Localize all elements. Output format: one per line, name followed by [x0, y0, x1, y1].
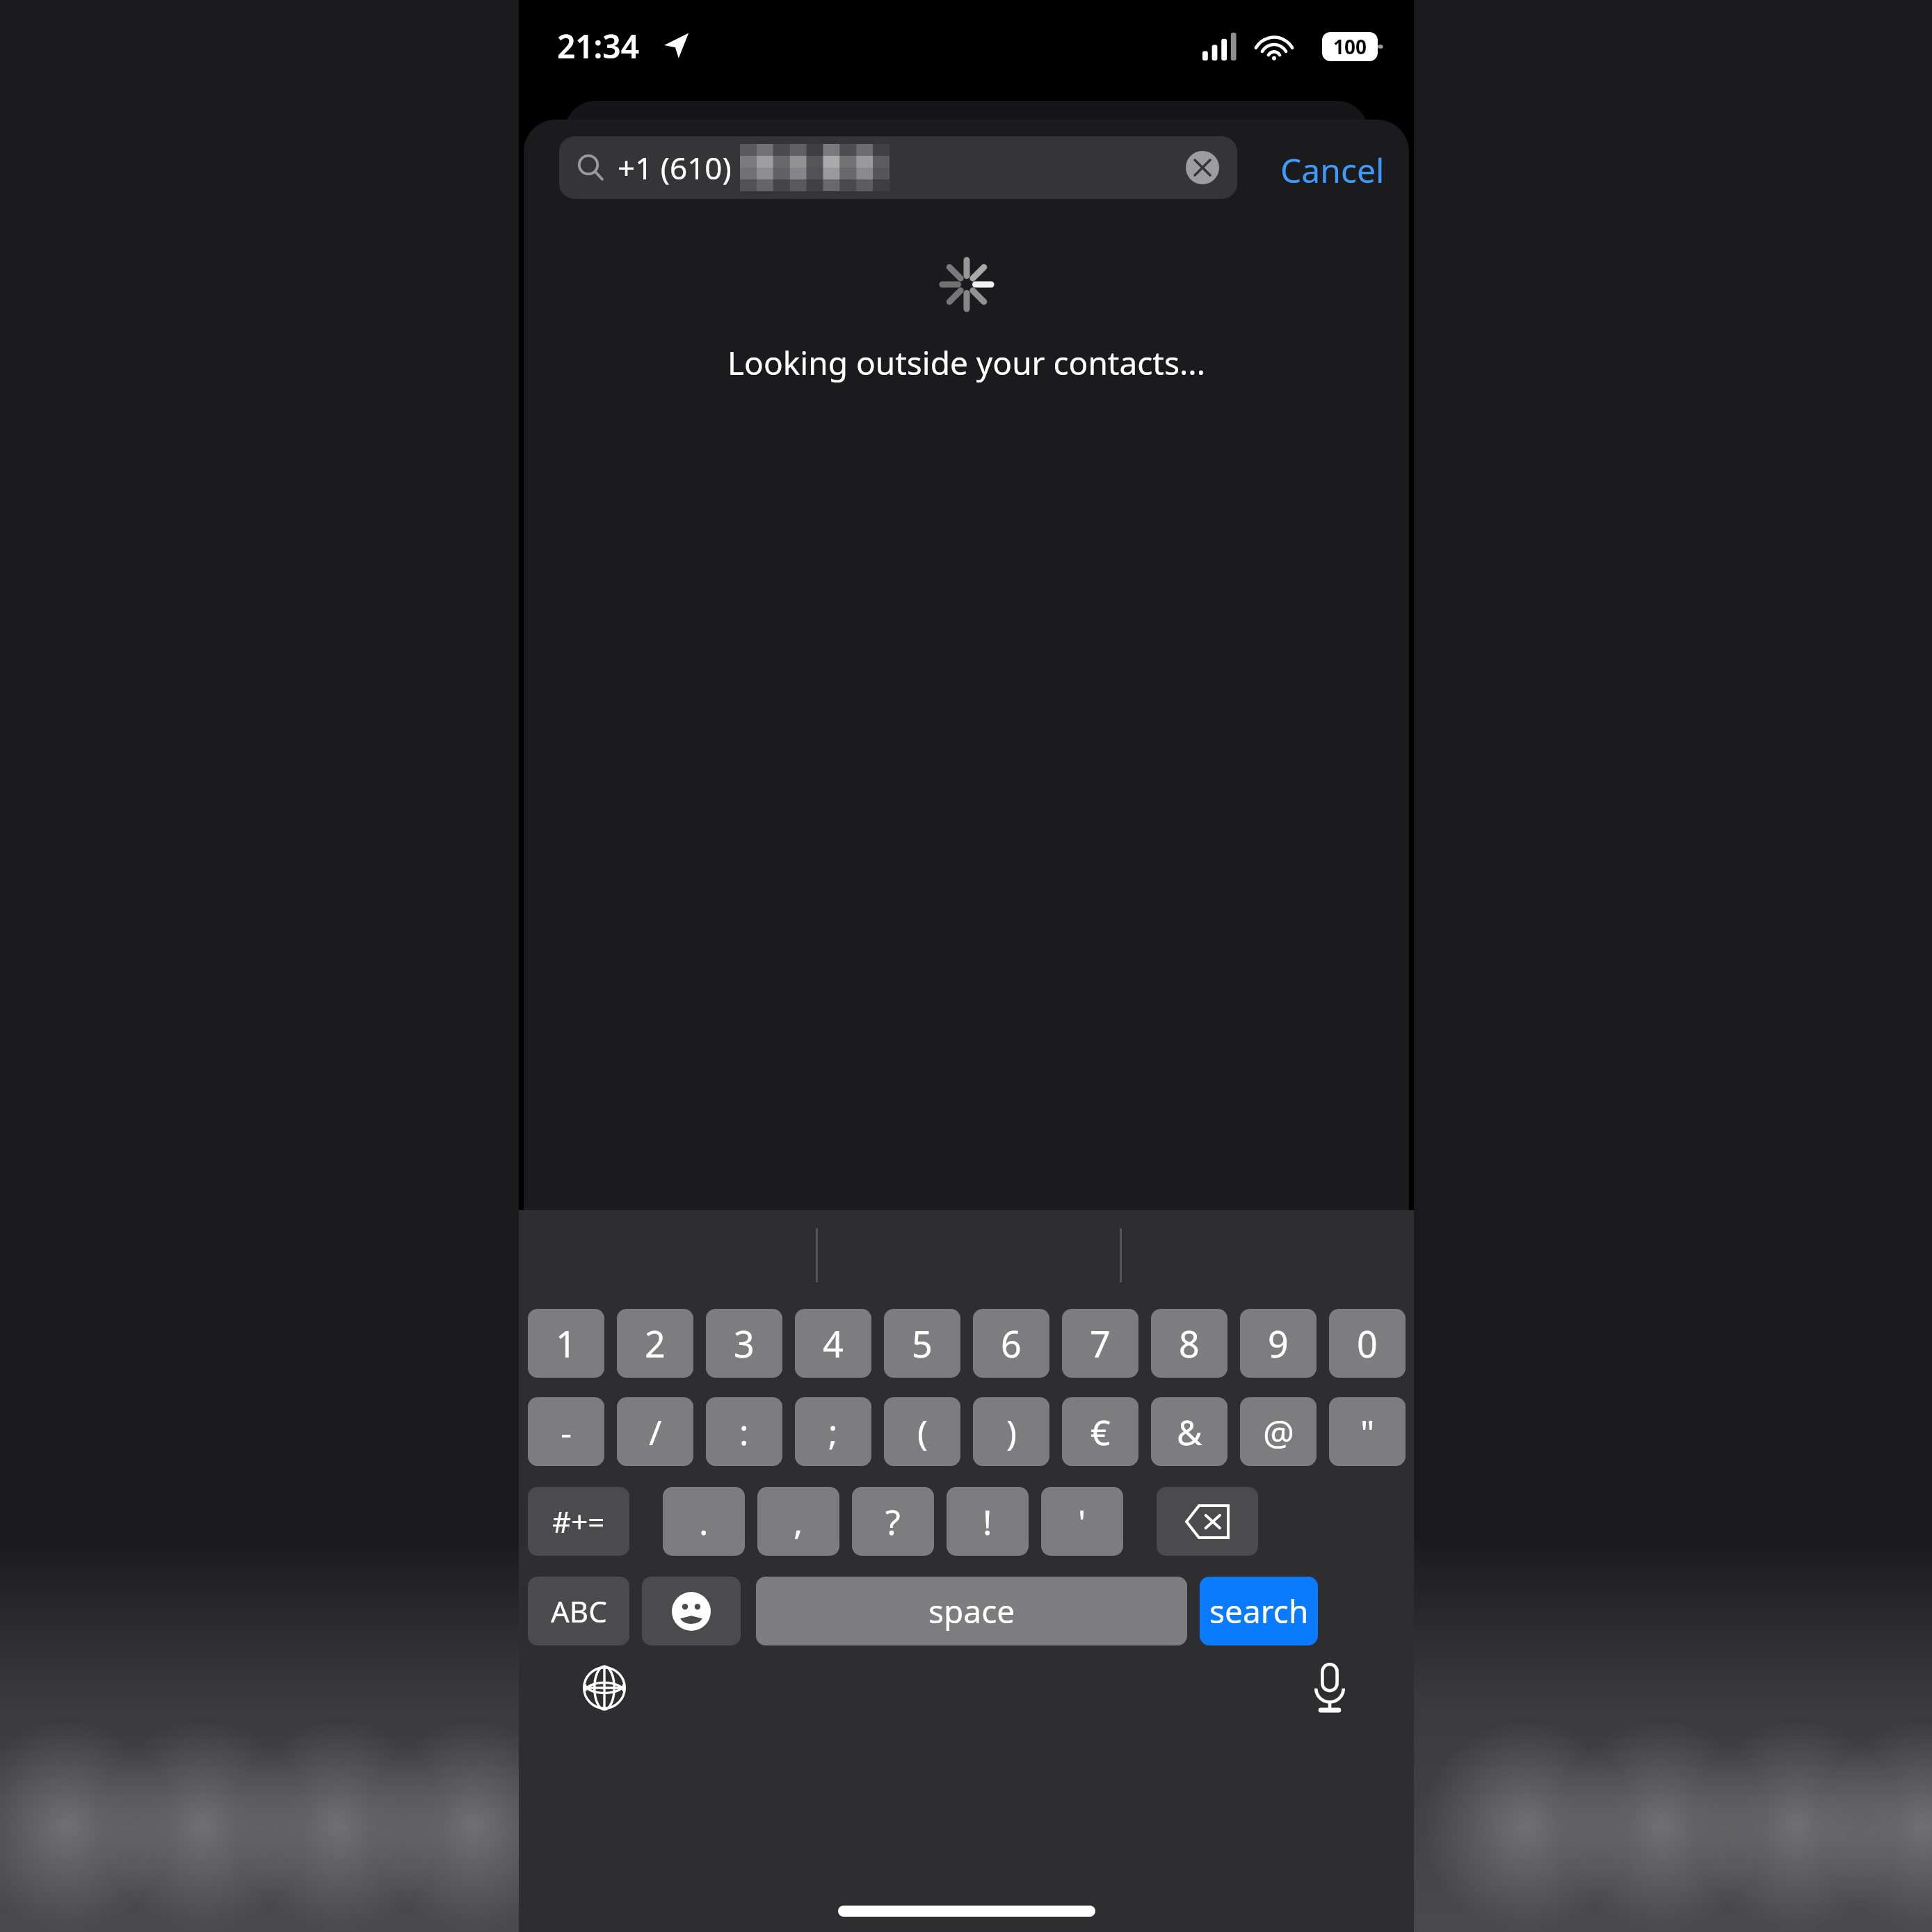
button[interactable]: & [1151, 1397, 1227, 1466]
button[interactable]: 2 [617, 1309, 693, 1378]
staticText: : [739, 1408, 749, 1456]
staticText: 3 [734, 1319, 755, 1368]
staticText: ! [983, 1498, 992, 1545]
button[interactable]: space [756, 1577, 1187, 1645]
staticText: . [699, 1498, 709, 1545]
staticText: #+= [552, 1502, 605, 1541]
button[interactable]: 9 [1240, 1309, 1317, 1378]
button[interactable]: ABC [528, 1577, 629, 1645]
staticText: 5 [912, 1319, 933, 1368]
button[interactable]: ) [973, 1397, 1049, 1466]
button[interactable]: 3 [706, 1309, 782, 1378]
button[interactable]: Emoji keyboard [642, 1577, 741, 1645]
staticText: € [1090, 1408, 1111, 1456]
staticText: 1 [556, 1319, 577, 1368]
staticText: , [794, 1498, 803, 1545]
staticText: " [1360, 1408, 1375, 1456]
button[interactable]: Dictation [1298, 1657, 1361, 1719]
staticText: ; [828, 1408, 838, 1456]
button[interactable]: Clear text [1186, 151, 1219, 184]
button[interactable]: : [706, 1397, 782, 1466]
staticText: space [928, 1589, 1015, 1633]
staticText: 7 [1090, 1319, 1111, 1368]
button[interactable]: Cancel [1280, 147, 1385, 193]
button[interactable]: 6 [973, 1309, 1049, 1378]
staticText: ' [1078, 1498, 1086, 1545]
button[interactable]: search [1200, 1577, 1318, 1645]
staticText: - [561, 1408, 572, 1456]
staticText: 100 [1333, 33, 1367, 60]
staticText: 8 [1179, 1319, 1200, 1368]
button[interactable]: . [663, 1487, 745, 1556]
staticText: ABC [551, 1591, 607, 1631]
button[interactable]: 5 [884, 1309, 960, 1378]
button[interactable]: #+= [528, 1487, 629, 1556]
staticText: 6 [1001, 1319, 1022, 1368]
staticText: 9 [1268, 1319, 1289, 1368]
staticText: Cancel [1280, 147, 1385, 193]
button[interactable]: +1 (610) [559, 136, 1237, 199]
button[interactable]: 0 [1329, 1309, 1406, 1378]
staticText: & [1177, 1408, 1202, 1456]
staticText: / [649, 1408, 662, 1456]
staticText: Looking outside your contacts... [727, 341, 1205, 385]
button[interactable]: Change keyboard language [573, 1657, 636, 1719]
button[interactable]: @ [1240, 1397, 1317, 1466]
button[interactable]: 7 [1062, 1309, 1138, 1378]
staticText: ) [1006, 1408, 1017, 1456]
staticText: ? [885, 1498, 901, 1545]
button[interactable]: 1 [528, 1309, 604, 1378]
button[interactable]: ( [884, 1397, 960, 1466]
button[interactable]: ! [947, 1487, 1029, 1556]
staticText: 21:34 [557, 24, 639, 68]
button[interactable]: Backspace [1157, 1487, 1258, 1556]
button[interactable]: " [1329, 1397, 1406, 1466]
staticText: +1 (610) [618, 147, 732, 188]
button[interactable]: - [528, 1397, 604, 1466]
button[interactable]: ; [795, 1397, 871, 1466]
staticText: 2 [645, 1319, 666, 1368]
button[interactable]: , [757, 1487, 839, 1556]
staticText: 0 [1357, 1319, 1378, 1368]
button[interactable]: ? [852, 1487, 934, 1556]
staticText: @ [1263, 1408, 1294, 1456]
staticText: search [1209, 1589, 1309, 1633]
button[interactable]: € [1062, 1397, 1138, 1466]
staticText: 4 [823, 1319, 844, 1368]
button[interactable]: 8 [1151, 1309, 1227, 1378]
button[interactable]: ' [1041, 1487, 1123, 1556]
button[interactable]: / [617, 1397, 693, 1466]
button[interactable]: 4 [795, 1309, 871, 1378]
staticText: ( [917, 1408, 928, 1456]
